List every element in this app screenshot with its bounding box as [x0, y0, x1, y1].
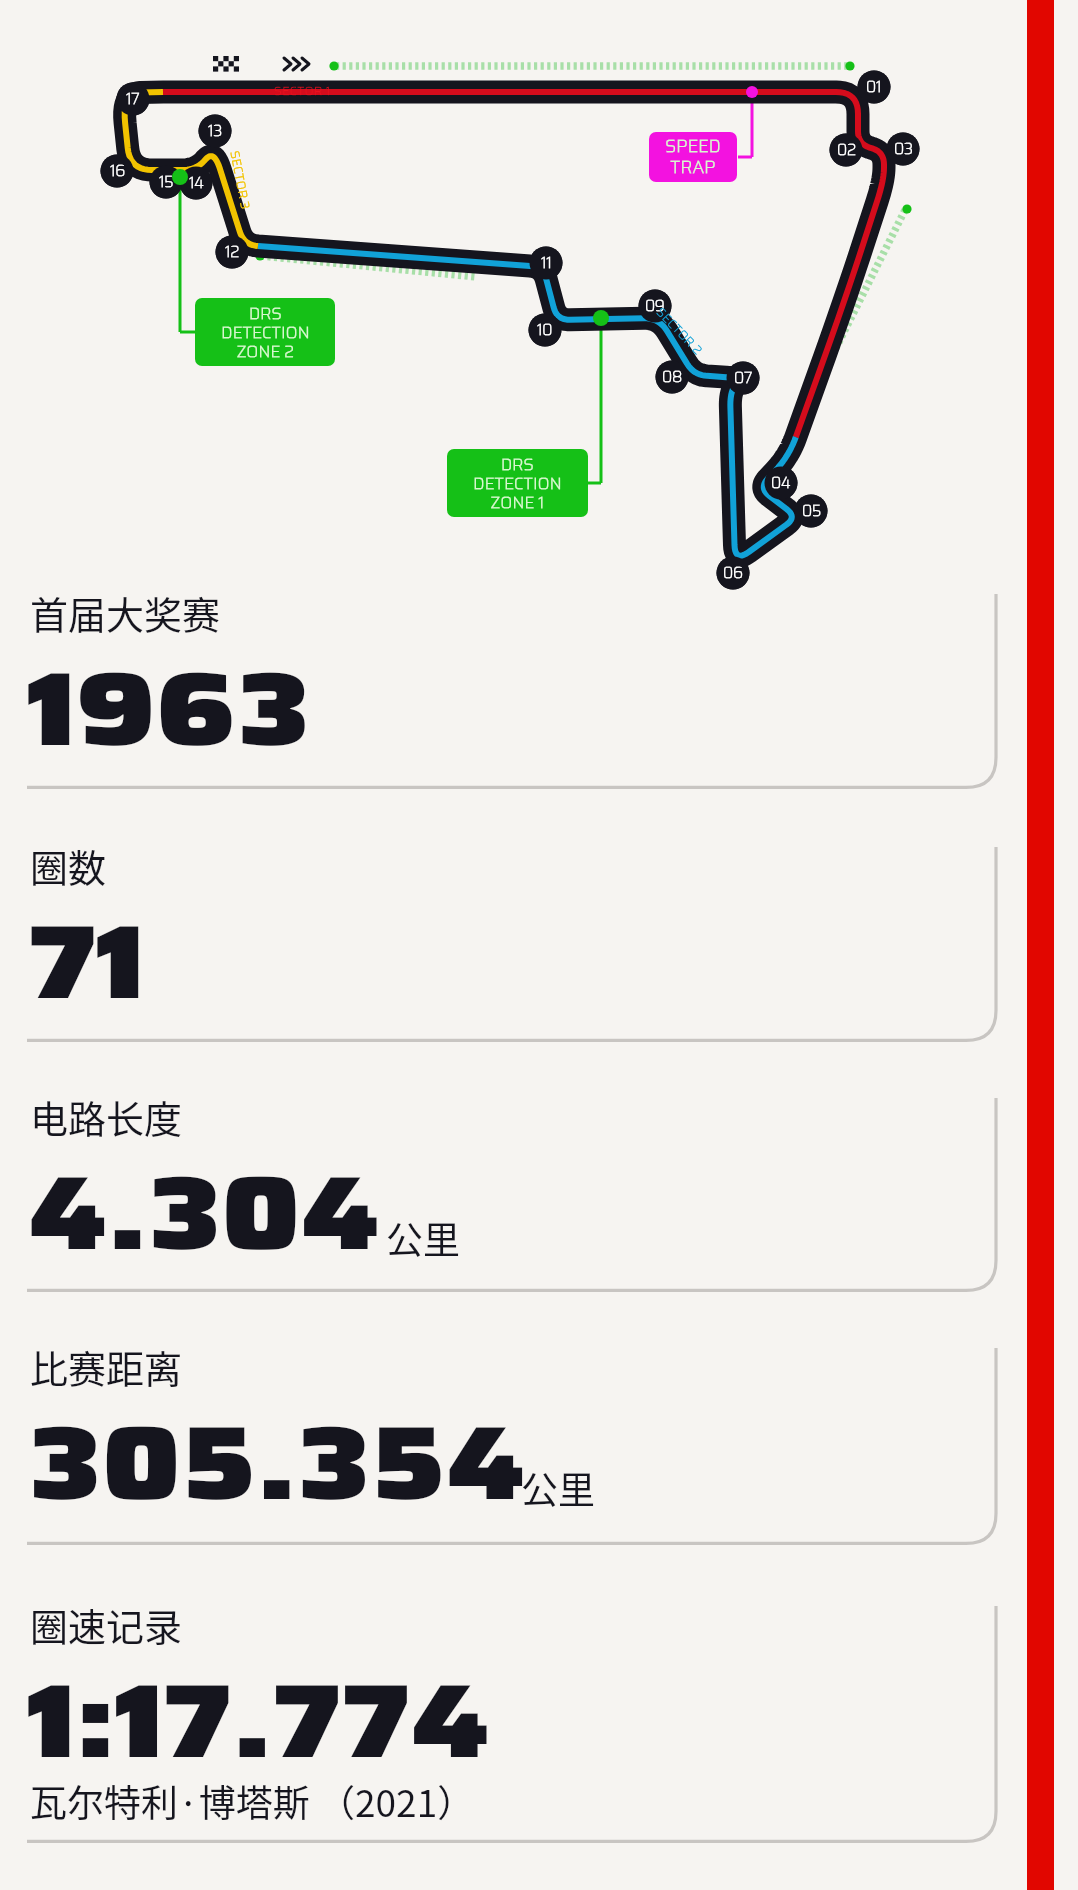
staticText: 12 — [225, 240, 240, 264]
staticText: 04 — [771, 471, 791, 495]
staticText: SECTOR 2 — [654, 303, 708, 357]
button[interactable]: 比赛距离 — [0, 1348, 1078, 1545]
staticText: DRS DETECTION ZONE 2 — [221, 301, 310, 364]
staticText: SECTOR 3 — [228, 149, 256, 211]
staticText: 11 — [541, 251, 552, 275]
staticText: 15 — [159, 170, 174, 194]
staticText: 1:17.774 — [28, 1639, 490, 1803]
staticText: 07 — [734, 366, 753, 390]
staticText: SPEED TRAP — [665, 133, 721, 181]
staticText: 首届大奖赛 — [30, 585, 221, 640]
staticText: 71 — [28, 880, 145, 1044]
button[interactable]: 圈速记录 — [0, 1606, 1078, 1843]
staticText: 圈速记录 — [30, 1597, 183, 1652]
staticText: DRS DETECTION ZONE 1 — [473, 452, 562, 515]
staticText: 瓦尔特利·博塔斯 （2021） — [30, 1774, 475, 1828]
button[interactable]: Speed trap — [649, 132, 737, 182]
staticText: 01 — [866, 75, 882, 99]
button[interactable]: DRS detection zone 2 — [195, 298, 335, 366]
staticText: 02 — [837, 138, 856, 162]
button[interactable]: 电路长度 — [0, 1098, 1078, 1292]
button[interactable]: DRS detection zone 1 — [447, 449, 588, 517]
staticText: 16 — [110, 159, 125, 183]
staticText: 公里 — [386, 1211, 460, 1265]
staticText: SECTOR 1 — [274, 81, 331, 97]
staticText: 08 — [662, 365, 682, 389]
staticText: 17 — [126, 87, 140, 111]
button[interactable]: 首届大奖赛 — [0, 594, 1078, 789]
staticText: 1963 — [28, 627, 311, 791]
staticText: 14 — [189, 171, 204, 195]
staticText: 05 — [802, 499, 821, 523]
staticText: 公里 — [521, 1461, 595, 1515]
staticText: 305.354 — [28, 1381, 526, 1545]
staticText: 06 — [723, 561, 743, 585]
staticText: 圈数 — [30, 838, 107, 893]
staticText: 10 — [537, 318, 553, 342]
staticText: 03 — [894, 137, 913, 161]
staticText: 13 — [208, 119, 223, 143]
staticText: 4.304 — [28, 1131, 380, 1295]
staticText: 电路长度 — [30, 1089, 183, 1144]
button[interactable]: 圈数 — [0, 847, 1078, 1042]
staticText: 09 — [645, 294, 665, 318]
staticText: 比赛距离 — [30, 1339, 183, 1394]
